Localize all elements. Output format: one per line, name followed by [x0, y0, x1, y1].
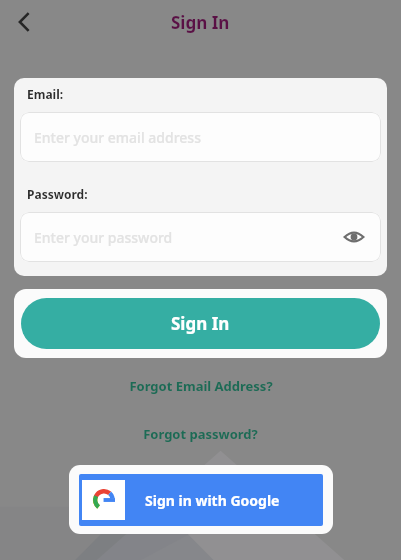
staticText: Sign in with Google	[145, 491, 280, 510]
staticText: Forgot Email Address?	[129, 377, 273, 395]
button[interactable]: Sign In	[21, 298, 380, 349]
button[interactable]: Back	[6, 2, 46, 42]
staticText: Enter your password	[34, 228, 173, 247]
button[interactable]: Forgot password?	[0, 421, 401, 447]
staticText: Password:	[27, 186, 88, 202]
staticText: Enter your email address	[34, 128, 201, 147]
button[interactable]: Show password	[337, 220, 371, 254]
staticText: Email:	[27, 86, 64, 102]
button[interactable]: Enter your password	[20, 212, 381, 262]
staticText: Sign In	[171, 11, 230, 34]
button[interactable]: Enter your email address	[20, 112, 381, 162]
staticText: Sign In	[171, 312, 230, 335]
button[interactable]: Sign in with Google	[79, 474, 323, 526]
staticText: Forgot password?	[143, 425, 258, 443]
button[interactable]: Forgot Email Address?	[0, 373, 401, 399]
